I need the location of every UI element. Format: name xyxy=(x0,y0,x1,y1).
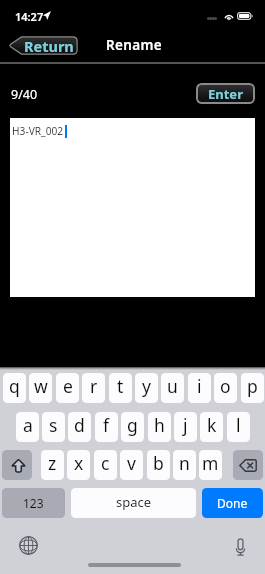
button[interactable]: d xyxy=(68,412,91,442)
staticText: j xyxy=(183,413,188,437)
button[interactable]: v xyxy=(120,450,143,480)
staticText: 123 xyxy=(23,495,44,511)
staticText: Done xyxy=(217,495,248,511)
button[interactable]: g xyxy=(121,412,144,442)
staticText: u xyxy=(167,374,178,398)
staticText: c xyxy=(101,451,110,475)
staticText: v xyxy=(127,451,136,475)
staticText: b xyxy=(153,451,164,475)
button[interactable]: Shift xyxy=(2,450,32,480)
staticText: Rename xyxy=(106,36,163,54)
staticText: a xyxy=(23,413,33,437)
staticText: Enter xyxy=(208,85,243,103)
button[interactable]: q xyxy=(3,373,26,403)
button[interactable]: s xyxy=(42,412,65,442)
button[interactable]: 123 xyxy=(2,488,65,518)
button[interactable]: k xyxy=(200,412,223,442)
staticText: q xyxy=(9,374,20,398)
button[interactable]: Change keyboard xyxy=(18,535,38,555)
staticText: i xyxy=(197,374,202,398)
button[interactable]: l xyxy=(227,412,250,442)
staticText: f xyxy=(103,413,110,437)
button[interactable]: n xyxy=(173,450,196,480)
staticText: p xyxy=(247,374,258,398)
staticText: e xyxy=(63,374,73,398)
button[interactable]: j xyxy=(174,412,197,442)
staticText: y xyxy=(142,374,151,398)
button[interactable]: x xyxy=(67,450,90,480)
button[interactable]: z xyxy=(41,450,64,480)
staticText: g xyxy=(127,413,138,437)
button[interactable]: Dictate xyxy=(231,538,249,556)
staticText: 9/40 xyxy=(11,86,38,103)
staticText: x xyxy=(74,451,84,475)
button[interactable]: e xyxy=(56,373,79,403)
staticText: z xyxy=(48,451,57,475)
staticText: o xyxy=(220,374,231,398)
button[interactable]: space xyxy=(71,488,196,518)
staticText: Return xyxy=(24,36,74,55)
button[interactable]: p xyxy=(241,373,264,403)
button[interactable]: f xyxy=(95,412,118,442)
staticText: k xyxy=(207,413,217,437)
button[interactable]: m xyxy=(199,450,222,480)
staticText: H3-VR_002 xyxy=(12,124,64,138)
button[interactable]: b xyxy=(147,450,170,480)
staticText: h xyxy=(154,413,165,437)
button[interactable]: r xyxy=(82,373,105,403)
staticText: l xyxy=(236,413,241,437)
staticText: t xyxy=(117,374,124,398)
staticText: d xyxy=(74,413,85,437)
staticText: n xyxy=(179,451,190,475)
button[interactable]: Enter xyxy=(196,83,255,104)
staticText: w xyxy=(34,374,48,398)
button[interactable]: Backspace xyxy=(233,450,263,480)
staticText: m xyxy=(202,451,219,475)
button[interactable]: Return xyxy=(8,36,78,55)
staticText: s xyxy=(49,413,58,437)
button[interactable]: h xyxy=(148,412,171,442)
button[interactable]: Done xyxy=(202,488,263,518)
button[interactable]: t xyxy=(109,373,132,403)
button[interactable]: o xyxy=(214,373,237,403)
button[interactable]: H3-VR_002 xyxy=(10,118,255,297)
staticText: 14:27 xyxy=(15,9,44,24)
button[interactable]: a xyxy=(16,412,39,442)
staticText: space xyxy=(116,493,152,511)
button[interactable]: u xyxy=(161,373,184,403)
button[interactable]: i xyxy=(188,373,211,403)
button[interactable]: y xyxy=(135,373,158,403)
button[interactable]: c xyxy=(94,450,117,480)
staticText: r xyxy=(90,374,98,398)
button[interactable]: w xyxy=(29,373,52,403)
